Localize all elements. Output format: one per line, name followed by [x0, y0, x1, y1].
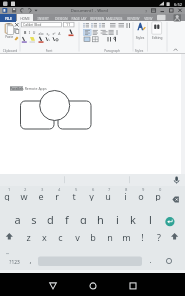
button[interactable]: FILE — [0, 14, 16, 21]
button[interactable] — [17, 14, 33, 22]
button[interactable]: k — [125, 212, 141, 224]
button[interactable]: ? — [151, 231, 167, 242]
staticText: u — [105, 190, 111, 201]
button[interactable]: m — [118, 231, 134, 242]
staticText: I — [28, 29, 30, 34]
staticText: 4 — [58, 186, 60, 191]
staticText: v — [75, 231, 80, 242]
button[interactable]: w — [16, 190, 32, 201]
staticText: l — [149, 212, 152, 224]
staticText: a — [14, 212, 21, 224]
button[interactable]: q — [0, 190, 15, 201]
button[interactable]: , — [25, 255, 35, 265]
staticText: 8 — [125, 186, 127, 191]
button[interactable] — [0, 14, 16, 22]
staticText: 9 — [142, 186, 144, 191]
staticText: w — [20, 190, 28, 201]
staticText: Paragraph — [104, 48, 120, 52]
staticText: y — [89, 190, 94, 201]
button[interactable]: Paste — [0, 34, 17, 38]
staticText: d — [47, 212, 54, 224]
button[interactable]: . — [145, 255, 155, 265]
staticText: ? — [145, 8, 147, 14]
staticText: j — [116, 212, 119, 224]
staticText: Document1 - Word — [70, 8, 108, 13]
staticText: 3 — [41, 186, 43, 191]
button[interactable]: y — [83, 190, 99, 201]
staticText: REFEREN — [90, 16, 104, 20]
button[interactable]: i — [117, 190, 133, 201]
button[interactable]: p — [150, 190, 166, 201]
button[interactable]: Editing — [149, 34, 164, 39]
button[interactable]: n — [102, 231, 118, 242]
staticText: k — [130, 212, 136, 224]
staticText: ?123 — [9, 259, 20, 266]
button[interactable] — [82, 278, 102, 291]
staticText: abc — [38, 31, 44, 35]
button[interactable]: a — [9, 212, 25, 224]
staticText: c — [58, 231, 63, 242]
staticText: r — [55, 190, 59, 201]
button[interactable] — [2, 230, 16, 244]
button[interactable] — [170, 174, 183, 185]
staticText: t — [72, 190, 76, 201]
button[interactable] — [122, 278, 142, 291]
staticText: 11 — [66, 22, 70, 27]
staticText: x₂ — [46, 31, 49, 35]
button[interactable]: x — [36, 231, 52, 242]
staticText: B — [24, 29, 26, 34]
button[interactable]: ?123 — [5, 258, 23, 267]
staticText: 1 — [8, 186, 10, 191]
button[interactable] — [166, 186, 182, 202]
staticText: HOME — [20, 16, 30, 20]
button[interactable]: l — [142, 212, 158, 224]
staticText: s — [31, 212, 37, 224]
staticText: 6 — [92, 186, 94, 191]
button[interactable] — [38, 256, 142, 266]
staticText: p — [155, 190, 161, 201]
button[interactable]: s — [26, 212, 42, 224]
button[interactable]: MAILINGS — [104, 14, 123, 21]
button[interactable]: Styles — [133, 34, 147, 39]
staticText: z — [26, 231, 31, 242]
button[interactable]: INSERT — [34, 14, 52, 21]
button[interactable]: d — [42, 212, 58, 224]
button[interactable]: f — [59, 212, 75, 224]
button[interactable]: v — [69, 231, 85, 242]
button[interactable]: VIEW — [141, 14, 155, 21]
staticText: e — [38, 190, 44, 201]
staticText: U — [32, 29, 35, 34]
staticText: o — [138, 190, 144, 201]
staticText: q — [4, 190, 10, 201]
button[interactable]: REFEREN — [88, 14, 106, 21]
button[interactable]: r — [49, 190, 65, 201]
button[interactable]: HOME — [17, 14, 33, 21]
staticText: g — [80, 212, 87, 224]
staticText: MAILINGS — [106, 16, 122, 20]
staticText: b — [90, 231, 96, 242]
button[interactable]: DESIGN — [52, 14, 69, 21]
button[interactable]: z — [20, 231, 36, 242]
button[interactable]: REVIEW — [124, 14, 142, 21]
button[interactable] — [164, 216, 176, 228]
button[interactable]: t — [66, 190, 82, 201]
staticText: x² — [52, 31, 55, 35]
button[interactable]: h — [92, 212, 108, 224]
button[interactable]: PAGE LAY — [69, 14, 88, 21]
button[interactable]: b — [85, 231, 101, 242]
button[interactable]: j — [109, 212, 125, 224]
staticText: f — [65, 212, 69, 224]
staticText: n — [107, 231, 113, 242]
button[interactable]: c — [52, 231, 68, 242]
button[interactable]: e — [33, 190, 49, 201]
button[interactable]: g — [75, 212, 91, 224]
button[interactable] — [42, 278, 62, 291]
button[interactable]: ! — [134, 231, 150, 242]
staticText: Clipboard — [2, 48, 17, 52]
button[interactable]: u — [100, 190, 116, 201]
button[interactable] — [168, 230, 182, 244]
button[interactable] — [163, 255, 175, 267]
staticText: ? — [157, 231, 161, 242]
button[interactable]: o — [133, 190, 149, 201]
staticText: m — [122, 231, 131, 242]
